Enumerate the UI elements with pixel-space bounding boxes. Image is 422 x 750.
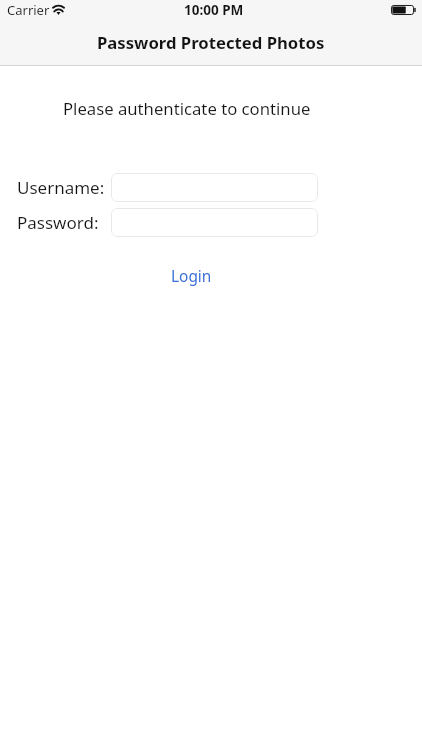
button[interactable]: Password: xyxy=(111,208,318,237)
staticText: 10:00 PM xyxy=(184,1,244,19)
other: Battery xyxy=(391,5,416,15)
staticText: Carrier xyxy=(7,1,50,19)
staticText: Password Protected Photos xyxy=(97,31,325,54)
button[interactable]: Login xyxy=(165,263,218,290)
staticText: Please authenticate to continue xyxy=(63,97,311,120)
staticText: Username: xyxy=(17,176,105,199)
button[interactable]: Username: xyxy=(111,173,318,202)
staticText: Password: xyxy=(17,211,99,234)
other: Wi-Fi xyxy=(52,5,65,15)
staticText: Login xyxy=(171,266,212,287)
